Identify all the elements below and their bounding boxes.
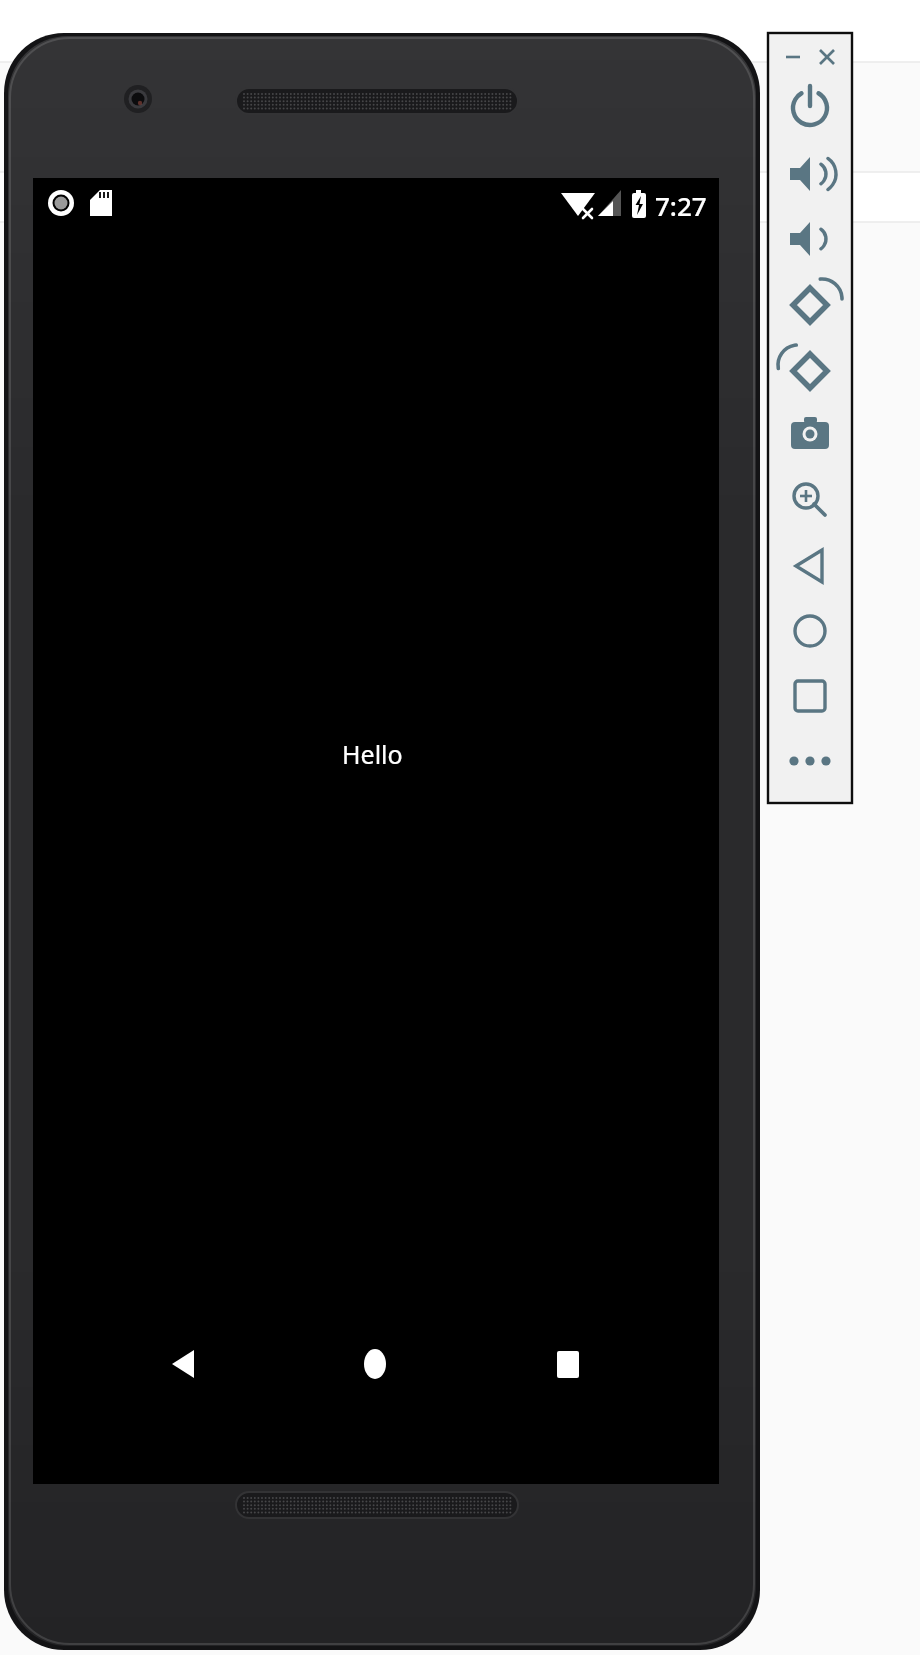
button[interactable]: Overview bbox=[782, 673, 838, 729]
button[interactable]: Home bbox=[782, 608, 838, 664]
button[interactable]: Back bbox=[782, 543, 838, 599]
button[interactable]: Recent apps bbox=[528, 1324, 608, 1404]
button[interactable]: Volume down bbox=[782, 216, 838, 272]
button[interactable]: Volume up bbox=[782, 151, 838, 207]
staticText: 7:27 bbox=[655, 188, 707, 223]
button[interactable]: Rotate left bbox=[782, 282, 838, 338]
button[interactable]: Rotate right bbox=[782, 348, 838, 404]
button[interactable]: More bbox=[782, 737, 838, 793]
button[interactable]: Power bbox=[782, 84, 838, 140]
button[interactable]: Close bbox=[806, 40, 834, 68]
button[interactable]: Back bbox=[144, 1324, 224, 1404]
button[interactable]: Zoom bbox=[782, 477, 838, 533]
button[interactable]: Minimize bbox=[775, 40, 803, 68]
staticText: Hello bbox=[342, 737, 403, 771]
button[interactable]: Screenshot bbox=[782, 411, 838, 467]
button[interactable]: Home bbox=[335, 1324, 415, 1404]
